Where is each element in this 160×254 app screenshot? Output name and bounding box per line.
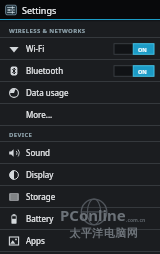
- button[interactable]: Battery: [0, 208, 160, 229]
- staticText: .com.cn: [126, 217, 146, 224]
- button[interactable]: Apps: [0, 230, 160, 251]
- staticText: Bluetooth: [26, 65, 64, 76]
- button[interactable]: Storage: [0, 186, 160, 207]
- staticText: Storage: [26, 191, 56, 202]
- staticText: PConline: [60, 205, 126, 225]
- staticText: Sound: [26, 147, 51, 158]
- staticText: ON: [138, 46, 147, 53]
- button[interactable]: Settings: [0, 0, 160, 19]
- button[interactable]: Toggle on: [114, 43, 154, 55]
- button[interactable]: More...: [0, 104, 160, 125]
- staticText: DEVICE: [9, 131, 33, 139]
- button[interactable]: Wi-Fi: [0, 38, 160, 59]
- staticText: Apps: [26, 235, 45, 246]
- staticText: Battery: [26, 213, 54, 224]
- button[interactable]: Toggle on: [114, 65, 154, 77]
- staticText: Settings: [22, 4, 57, 16]
- button[interactable]: Display: [0, 164, 160, 185]
- staticText: 太平洋电脑网: [69, 226, 138, 240]
- staticText: ON: [138, 68, 147, 75]
- button[interactable]: Data usage: [0, 82, 160, 103]
- staticText: Display: [26, 169, 54, 180]
- button[interactable]: Sound: [0, 142, 160, 163]
- staticText: More...: [26, 109, 53, 120]
- button[interactable]: Bluetooth: [0, 60, 160, 81]
- staticText: Data usage: [26, 87, 69, 98]
- staticText: Wi-Fi: [26, 43, 45, 54]
- staticText: WIRELESS & NETWORKS: [9, 27, 86, 35]
